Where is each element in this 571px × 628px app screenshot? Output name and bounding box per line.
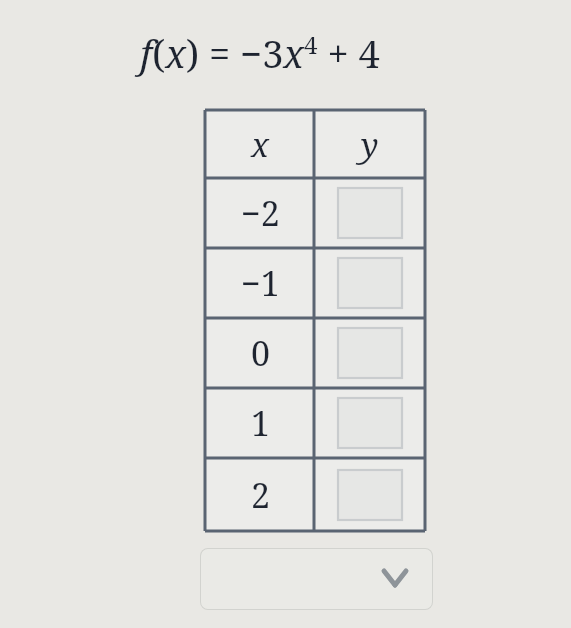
staticText: x bbox=[251, 122, 270, 167]
staticText: 1 bbox=[251, 400, 271, 446]
staticText: 2 bbox=[251, 472, 271, 518]
button[interactable]: Answer box bbox=[338, 398, 402, 448]
staticText: y bbox=[361, 122, 379, 167]
button[interactable]: Answer box bbox=[338, 258, 402, 308]
button[interactable]: Answer box bbox=[338, 470, 402, 520]
staticText: −1 bbox=[241, 260, 280, 306]
button[interactable]: Select option bbox=[200, 548, 433, 610]
button[interactable]: Answer box bbox=[338, 328, 402, 378]
button[interactable]: Answer box bbox=[338, 188, 402, 238]
staticText: 0 bbox=[251, 330, 271, 376]
staticText: f(x) = −3x4 + 4 bbox=[140, 27, 380, 79]
staticText: −2 bbox=[241, 190, 280, 236]
